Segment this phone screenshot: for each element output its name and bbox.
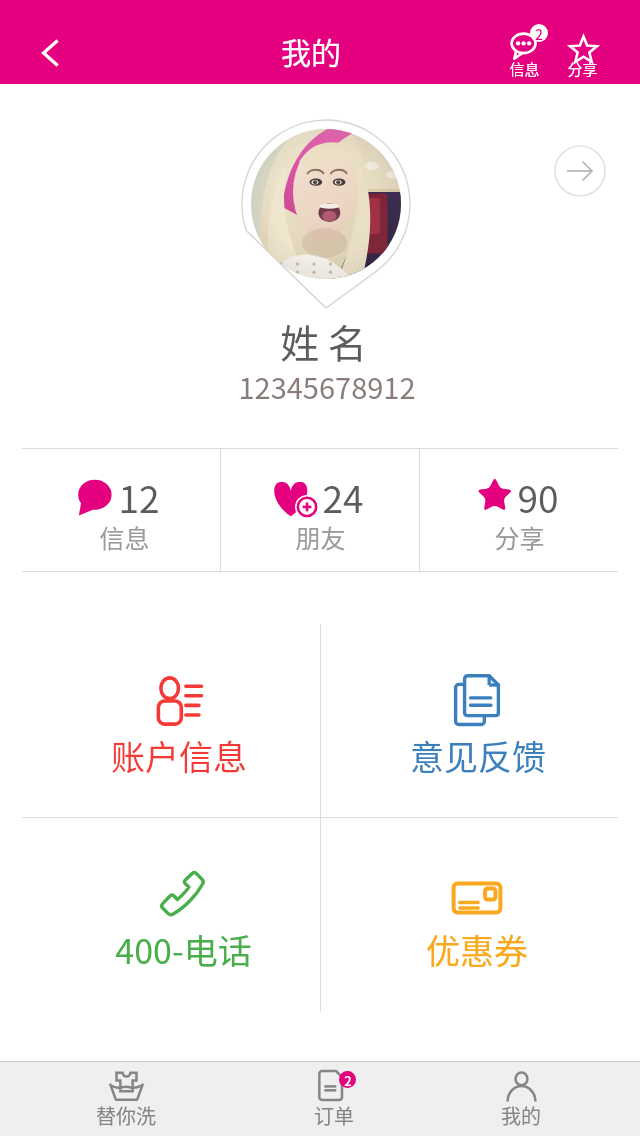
button[interactable]: [90, 849, 346, 984]
staticText: 12345678912: [238, 365, 416, 407]
staticText: 分享: [494, 519, 545, 555]
staticText: 信息: [509, 58, 540, 80]
staticText: 12: [118, 470, 160, 524]
staticText: 24: [322, 470, 364, 524]
staticText: 400-电话: [115, 925, 252, 974]
staticText: 90: [517, 470, 559, 524]
staticText: 替你洗: [96, 1101, 156, 1130]
staticText: 我的: [501, 1101, 541, 1130]
button[interactable]: [21, 449, 219, 571]
staticText: 2: [344, 1071, 352, 1088]
staticText: 姓 名: [280, 313, 367, 369]
staticText: 意见反馈: [410, 731, 546, 780]
staticText: 账户信息: [111, 731, 247, 780]
staticText: 2: [535, 24, 543, 42]
staticText: 优惠券: [426, 925, 528, 974]
button[interactable]: [479, 1062, 563, 1136]
button[interactable]: [292, 1062, 376, 1136]
staticText: 我的: [281, 29, 341, 72]
staticText: 分享: [567, 58, 598, 80]
button[interactable]: [401, 858, 555, 984]
button[interactable]: [74, 1062, 178, 1136]
button[interactable]: [21, 449, 219, 571]
staticText: 订单: [314, 1101, 354, 1130]
button[interactable]: [385, 654, 573, 790]
button[interactable]: Back: [25, 20, 73, 64]
staticText: 朋友: [295, 519, 346, 555]
button[interactable]: 分享: [558, 20, 610, 82]
button[interactable]: Next: [554, 145, 606, 197]
staticText: 信息: [99, 519, 150, 555]
button[interactable]: 2: [500, 20, 552, 82]
button[interactable]: [21, 449, 219, 571]
button[interactable]: [86, 655, 274, 790]
